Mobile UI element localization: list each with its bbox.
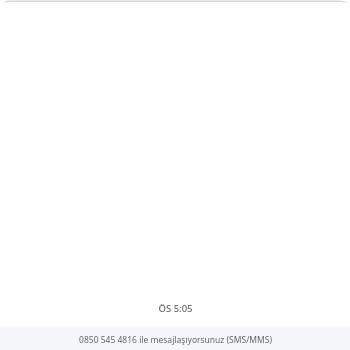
button[interactable]: 0850 545 4816 ile mesajlaşıyorsunuz (SMS… [0,324,350,350]
staticText: 0850 545 4816 ile mesajlaşıyorsunuz (SMS… [79,334,272,346]
staticText: ÖS 5:05 [158,302,193,315]
